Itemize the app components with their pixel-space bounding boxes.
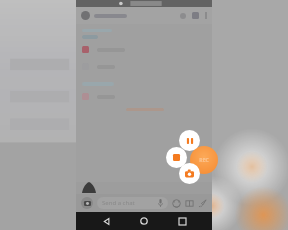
button[interactable]: Record (190, 146, 218, 174)
button[interactable]: Recent apps (174, 213, 190, 229)
button[interactable]: Send (198, 199, 207, 208)
button[interactable]: Emoji (172, 199, 181, 208)
button[interactable]: Stickers (185, 199, 194, 208)
button[interactable]: Home (136, 213, 152, 229)
staticText: REC (199, 157, 209, 164)
button[interactable]: Camera (179, 163, 200, 184)
button[interactable]: Camera (81, 197, 93, 209)
button[interactable]: Back (98, 213, 114, 229)
other: Voice message (158, 199, 163, 207)
button[interactable]: Send a chat (97, 197, 168, 209)
button[interactable] (76, 7, 212, 24)
staticText: Send a chat (102, 199, 135, 207)
button[interactable]: Pause (179, 130, 200, 151)
button[interactable]: Stop (166, 147, 187, 168)
